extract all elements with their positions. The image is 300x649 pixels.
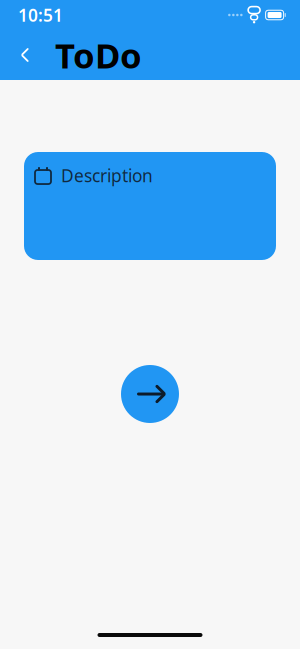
button[interactable]: Description bbox=[24, 152, 276, 260]
staticText: ToDo bbox=[55, 32, 142, 78]
button[interactable]: Continue bbox=[121, 365, 179, 423]
button[interactable]: Back bbox=[5, 33, 45, 77]
staticText: 10:51 bbox=[18, 3, 63, 26]
staticText: Description bbox=[61, 164, 153, 187]
